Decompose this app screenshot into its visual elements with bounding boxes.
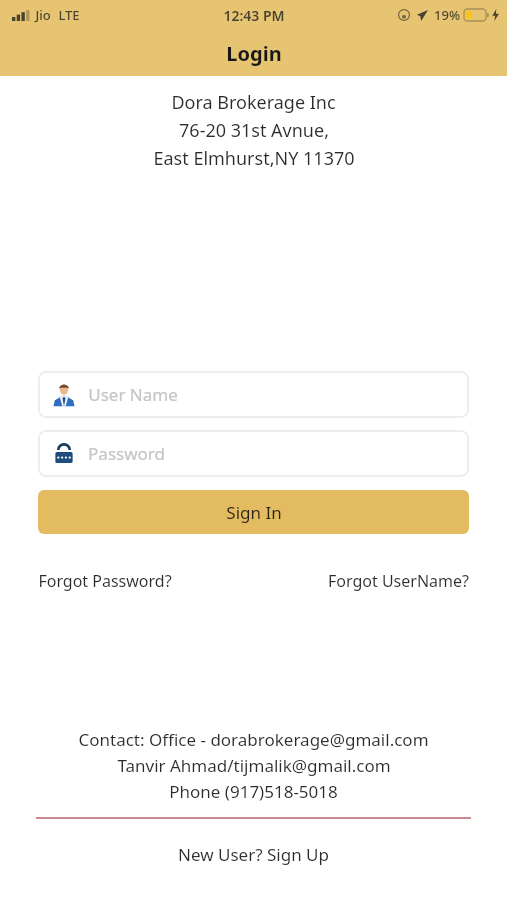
staticText: Jio: [35, 6, 51, 24]
other: Password: [52, 442, 76, 466]
staticText: 19%: [434, 6, 460, 24]
button[interactable]: Sign In: [38, 490, 469, 534]
button[interactable]: Forgot Password?: [36, 566, 174, 596]
staticText: New User? Sign Up: [178, 843, 329, 866]
staticText: Password: [88, 442, 165, 465]
button[interactable]: New User? Sign Up: [172, 839, 335, 870]
button[interactable]: Password: [38, 430, 469, 477]
staticText: Forgot UserName?: [328, 570, 469, 592]
staticText: Login: [226, 40, 282, 67]
other: User name: [52, 383, 76, 407]
staticText: Sign In: [226, 501, 282, 524]
staticText: Phone (917)518-5018: [169, 780, 338, 803]
staticText: Contact: Office - dorabrokerage@gmail.co…: [78, 728, 429, 751]
staticText: 76-20 31st Avnue,: [179, 118, 329, 143]
staticText: LTE: [58, 6, 80, 24]
staticText: Dora Brokerage Inc: [171, 90, 336, 115]
staticText: 12:43 PM: [223, 6, 285, 25]
staticText: Forgot Password?: [38, 570, 172, 592]
staticText: Tanvir Ahmad/tijmalik@gmail.com: [117, 754, 391, 777]
button[interactable]: Forgot UserName?: [326, 566, 471, 596]
button[interactable]: User name: [38, 371, 469, 418]
staticText: User Name: [88, 383, 178, 406]
staticText: East Elmhurst,NY 11370: [153, 146, 355, 171]
